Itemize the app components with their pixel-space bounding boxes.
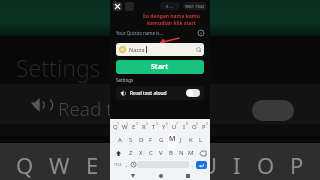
- staticText: H: [169, 136, 174, 144]
- button[interactable]: L: [196, 134, 206, 146]
- staticText: Read text aloud: [130, 90, 167, 97]
- staticText: P: [202, 123, 206, 131]
- button[interactable]: N: [176, 147, 186, 159]
- button[interactable]: G: [156, 134, 166, 146]
- staticText: O: [257, 150, 275, 180]
- button[interactable]: J: [176, 134, 186, 146]
- staticText: S: [129, 136, 133, 144]
- button[interactable]: Backspace: [196, 147, 209, 159]
- button[interactable]: More: [125, 2, 134, 11]
- staticText: M: [188, 149, 194, 157]
- staticText: 9: [196, 121, 199, 126]
- staticText: U: [172, 123, 177, 131]
- button[interactable]: Emoji: [130, 160, 137, 169]
- button[interactable]: Back: [128, 171, 137, 180]
- staticText: R: [142, 123, 146, 131]
- staticText: T: [152, 123, 156, 131]
- staticText: Z: [129, 149, 133, 157]
- staticText: K: [189, 136, 193, 144]
- staticText: ?123: [114, 162, 122, 167]
- staticText: Your Quizizz name is...: [116, 30, 164, 36]
- button[interactable]: M: [186, 147, 196, 159]
- staticText: 5: [156, 121, 159, 126]
- button[interactable]: W: [120, 121, 129, 133]
- button[interactable]: A: [114, 134, 125, 146]
- button[interactable]: U: [169, 121, 179, 133]
- button[interactable]: Info: [198, 30, 204, 36]
- staticText: 6: [166, 121, 169, 126]
- button[interactable]: F: [146, 134, 156, 146]
- staticText: A: [118, 136, 122, 144]
- staticText: ,: [126, 161, 128, 169]
- button[interactable]: P: [199, 121, 209, 133]
- staticText: 3: [136, 121, 139, 126]
- button[interactable]: Recents: [183, 171, 192, 180]
- button[interactable]: O: [189, 121, 199, 133]
- staticText: Isi dengan nama kamu: [143, 13, 200, 20]
- staticText: P: [290, 150, 304, 180]
- button[interactable]: I: [179, 121, 189, 133]
- button[interactable]: Enter: [196, 161, 207, 169]
- staticText: .: [192, 161, 194, 169]
- button[interactable]: E: [129, 121, 139, 133]
- staticText: B: [169, 149, 173, 157]
- button[interactable]: T: [149, 121, 159, 133]
- button[interactable]: ?123: [113, 160, 123, 169]
- staticText: C: [149, 149, 153, 157]
- staticText: N: [179, 149, 184, 157]
- staticText: E: [132, 123, 136, 131]
- staticText: Settings: [16, 52, 101, 83]
- staticText: 1: [117, 121, 120, 126]
- button[interactable]: C: [146, 147, 156, 159]
- staticText: X: [139, 149, 143, 157]
- staticText: 7: [176, 121, 179, 126]
- staticText: W: [49, 150, 70, 180]
- staticText: L: [199, 136, 203, 144]
- staticText: Y: [172, 150, 185, 180]
- staticText: kemudian klik start: [147, 20, 196, 27]
- staticText: V: [159, 149, 163, 157]
- staticText: Read te: [58, 96, 124, 122]
- button[interactable]: Comma: [123, 160, 130, 169]
- staticText: Q: [113, 123, 118, 131]
- staticText: U: [201, 150, 218, 180]
- button[interactable]: S: [125, 134, 136, 146]
- button[interactable]: Home: [156, 171, 165, 180]
- button[interactable]: Period: [189, 160, 196, 169]
- staticText: Q: [16, 150, 34, 180]
- staticText: I: [233, 150, 241, 180]
- staticText: Settings: [116, 77, 134, 83]
- staticText: 2: [126, 121, 129, 126]
- button[interactable]: Z: [125, 147, 136, 159]
- button[interactable]: K: [186, 134, 196, 146]
- button[interactable]: R: [139, 121, 149, 133]
- button[interactable]: X: [136, 147, 146, 159]
- button[interactable]: V: [156, 147, 166, 159]
- button[interactable]: Y: [159, 121, 169, 133]
- staticText: T: [144, 150, 157, 180]
- button[interactable]: D: [136, 134, 146, 146]
- staticText: 9861 7342: [185, 4, 205, 9]
- staticText: Nazza: [129, 46, 145, 53]
- button[interactable]: Start: [116, 60, 204, 74]
- button[interactable]: H: [166, 134, 176, 146]
- button[interactable]: Q: [111, 121, 120, 133]
- button[interactable]: B: [166, 147, 176, 159]
- button[interactable]: Nazza: [116, 43, 204, 56]
- staticText: E: [86, 150, 99, 180]
- button[interactable]: Close: [113, 2, 122, 11]
- button[interactable]: Read text aloud: [116, 86, 204, 100]
- staticText: O: [192, 123, 197, 131]
- staticText: M: [169, 134, 176, 144]
- staticText: Y: [162, 123, 166, 131]
- staticText: F: [149, 136, 153, 144]
- staticText: R: [114, 150, 128, 180]
- staticText: W: [122, 123, 128, 131]
- button[interactable]: Shift: [111, 147, 125, 159]
- staticText: 4: [146, 121, 149, 126]
- button[interactable]: Read text aloud toggle: [186, 89, 200, 97]
- staticText: G: [159, 136, 164, 144]
- staticText: D: [139, 136, 144, 144]
- staticText: 0: [206, 121, 209, 126]
